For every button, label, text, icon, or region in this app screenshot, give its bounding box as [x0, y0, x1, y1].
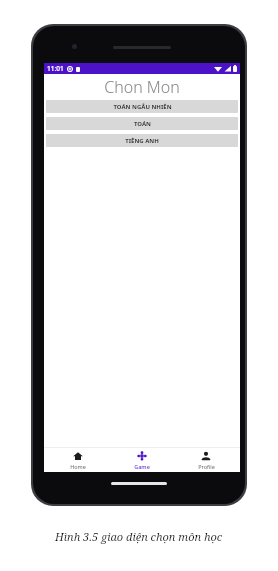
- button[interactable]: Profile: [176, 448, 236, 472]
- staticText: Profile: [198, 463, 215, 470]
- button[interactable]: TOÁN: [46, 117, 238, 130]
- staticText: Hình 3.5 giao diện chọn môn học: [55, 529, 223, 544]
- button[interactable]: Home: [48, 448, 108, 472]
- staticText: TOÁN: [134, 120, 151, 128]
- button[interactable]: Game: [112, 448, 172, 472]
- staticText: TIẾNG ANH: [125, 137, 159, 145]
- staticText: TOÁN NGẪU NHIÊN: [113, 103, 172, 111]
- staticText: Game: [134, 463, 150, 470]
- staticText: 11:01: [47, 64, 64, 73]
- staticText: Home: [70, 463, 86, 470]
- button[interactable]: TOÁN NGẪU NHIÊN: [46, 100, 238, 113]
- staticText: Chon Mon: [104, 76, 180, 98]
- button[interactable]: TIẾNG ANH: [46, 134, 238, 147]
